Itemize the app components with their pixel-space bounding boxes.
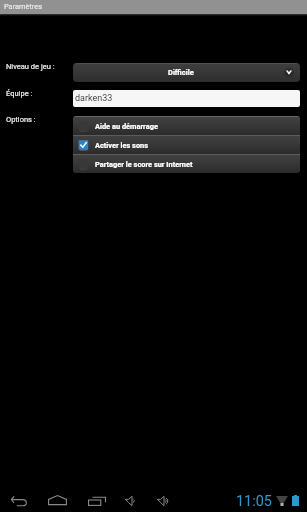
other: Wi-Fi <box>276 496 288 506</box>
button[interactable]: Home <box>43 492 71 508</box>
button[interactable]: darken33 <box>73 90 300 107</box>
staticText: Difficile <box>168 68 194 77</box>
button[interactable]: Volume up <box>151 493 175 509</box>
button[interactable]: Partager le score sur Internet <box>73 155 300 173</box>
staticText: Paramètres <box>4 2 43 11</box>
button[interactable]: Recent apps <box>83 493 111 509</box>
button[interactable]: Difficile <box>73 63 300 82</box>
staticText: Niveau de jeu : <box>6 62 55 71</box>
staticText: Partager le score sur Internet <box>95 160 193 169</box>
staticText: Activer les sons <box>95 141 149 150</box>
button[interactable]: Volume down <box>119 493 143 509</box>
button[interactable]: Aide au démarrage <box>73 117 300 135</box>
staticText: 11:05 <box>236 493 272 510</box>
button[interactable]: Back <box>5 492 33 508</box>
button[interactable]: Activer les sons <box>73 136 300 154</box>
button[interactable]: Paramètres <box>0 0 307 14</box>
staticText: Options : <box>6 115 36 124</box>
staticText: Équipe : <box>6 89 33 98</box>
staticText: Aide au démarrage <box>95 122 158 131</box>
staticText: darken33 <box>75 93 113 104</box>
